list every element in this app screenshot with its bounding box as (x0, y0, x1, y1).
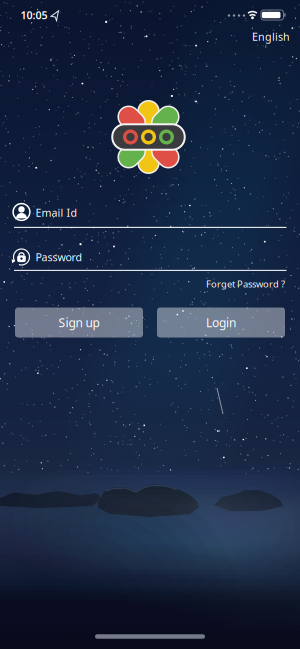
button[interactable]: Sign up (15, 307, 143, 337)
staticText: Login (206, 314, 236, 330)
button[interactable]: Password (13, 241, 287, 277)
button[interactable]: English (200, 26, 290, 46)
button[interactable]: Login (157, 307, 285, 337)
staticText: English (252, 29, 290, 44)
staticText: Forget Password ? (206, 278, 285, 290)
staticText: Sign up (58, 314, 99, 330)
button[interactable]: Email Id (13, 196, 287, 232)
staticText: 10:05 (20, 8, 47, 22)
button[interactable]: Forget Password ? (145, 275, 285, 293)
staticText: Email Id (35, 205, 77, 220)
staticText: Password (35, 250, 82, 264)
